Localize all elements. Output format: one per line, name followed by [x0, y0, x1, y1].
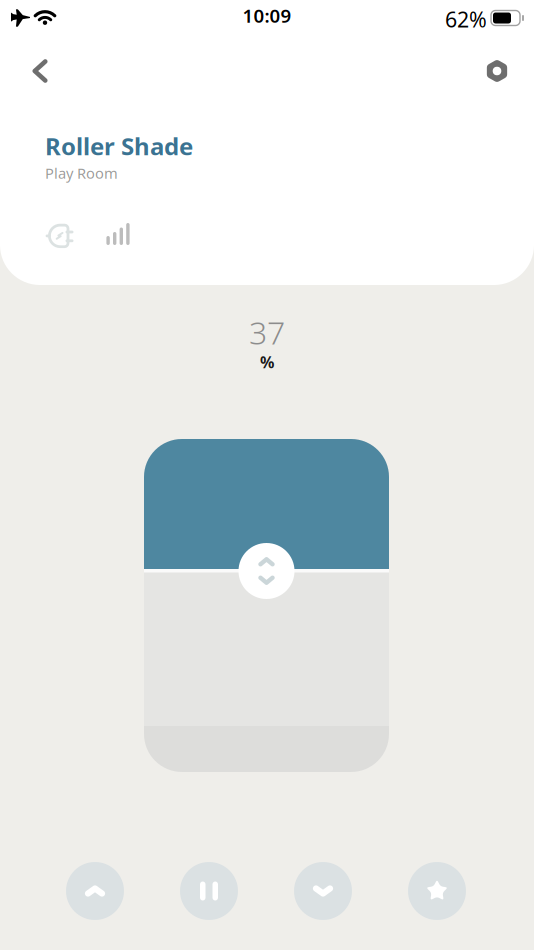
button[interactable]: Close	[294, 862, 352, 920]
button[interactable]: Stop	[180, 862, 238, 920]
button[interactable]: Settings	[473, 47, 521, 95]
button[interactable]: Favourite	[408, 862, 466, 920]
staticText: 37	[249, 311, 285, 353]
staticText: Roller Shade	[45, 130, 193, 158]
button[interactable]: Open	[66, 862, 124, 920]
staticText: %	[260, 351, 274, 373]
staticText: 10:09	[242, 3, 291, 27]
staticText: 62%	[445, 5, 487, 29]
staticText: Play Room	[45, 163, 118, 183]
button[interactable]: Back	[16, 47, 64, 95]
